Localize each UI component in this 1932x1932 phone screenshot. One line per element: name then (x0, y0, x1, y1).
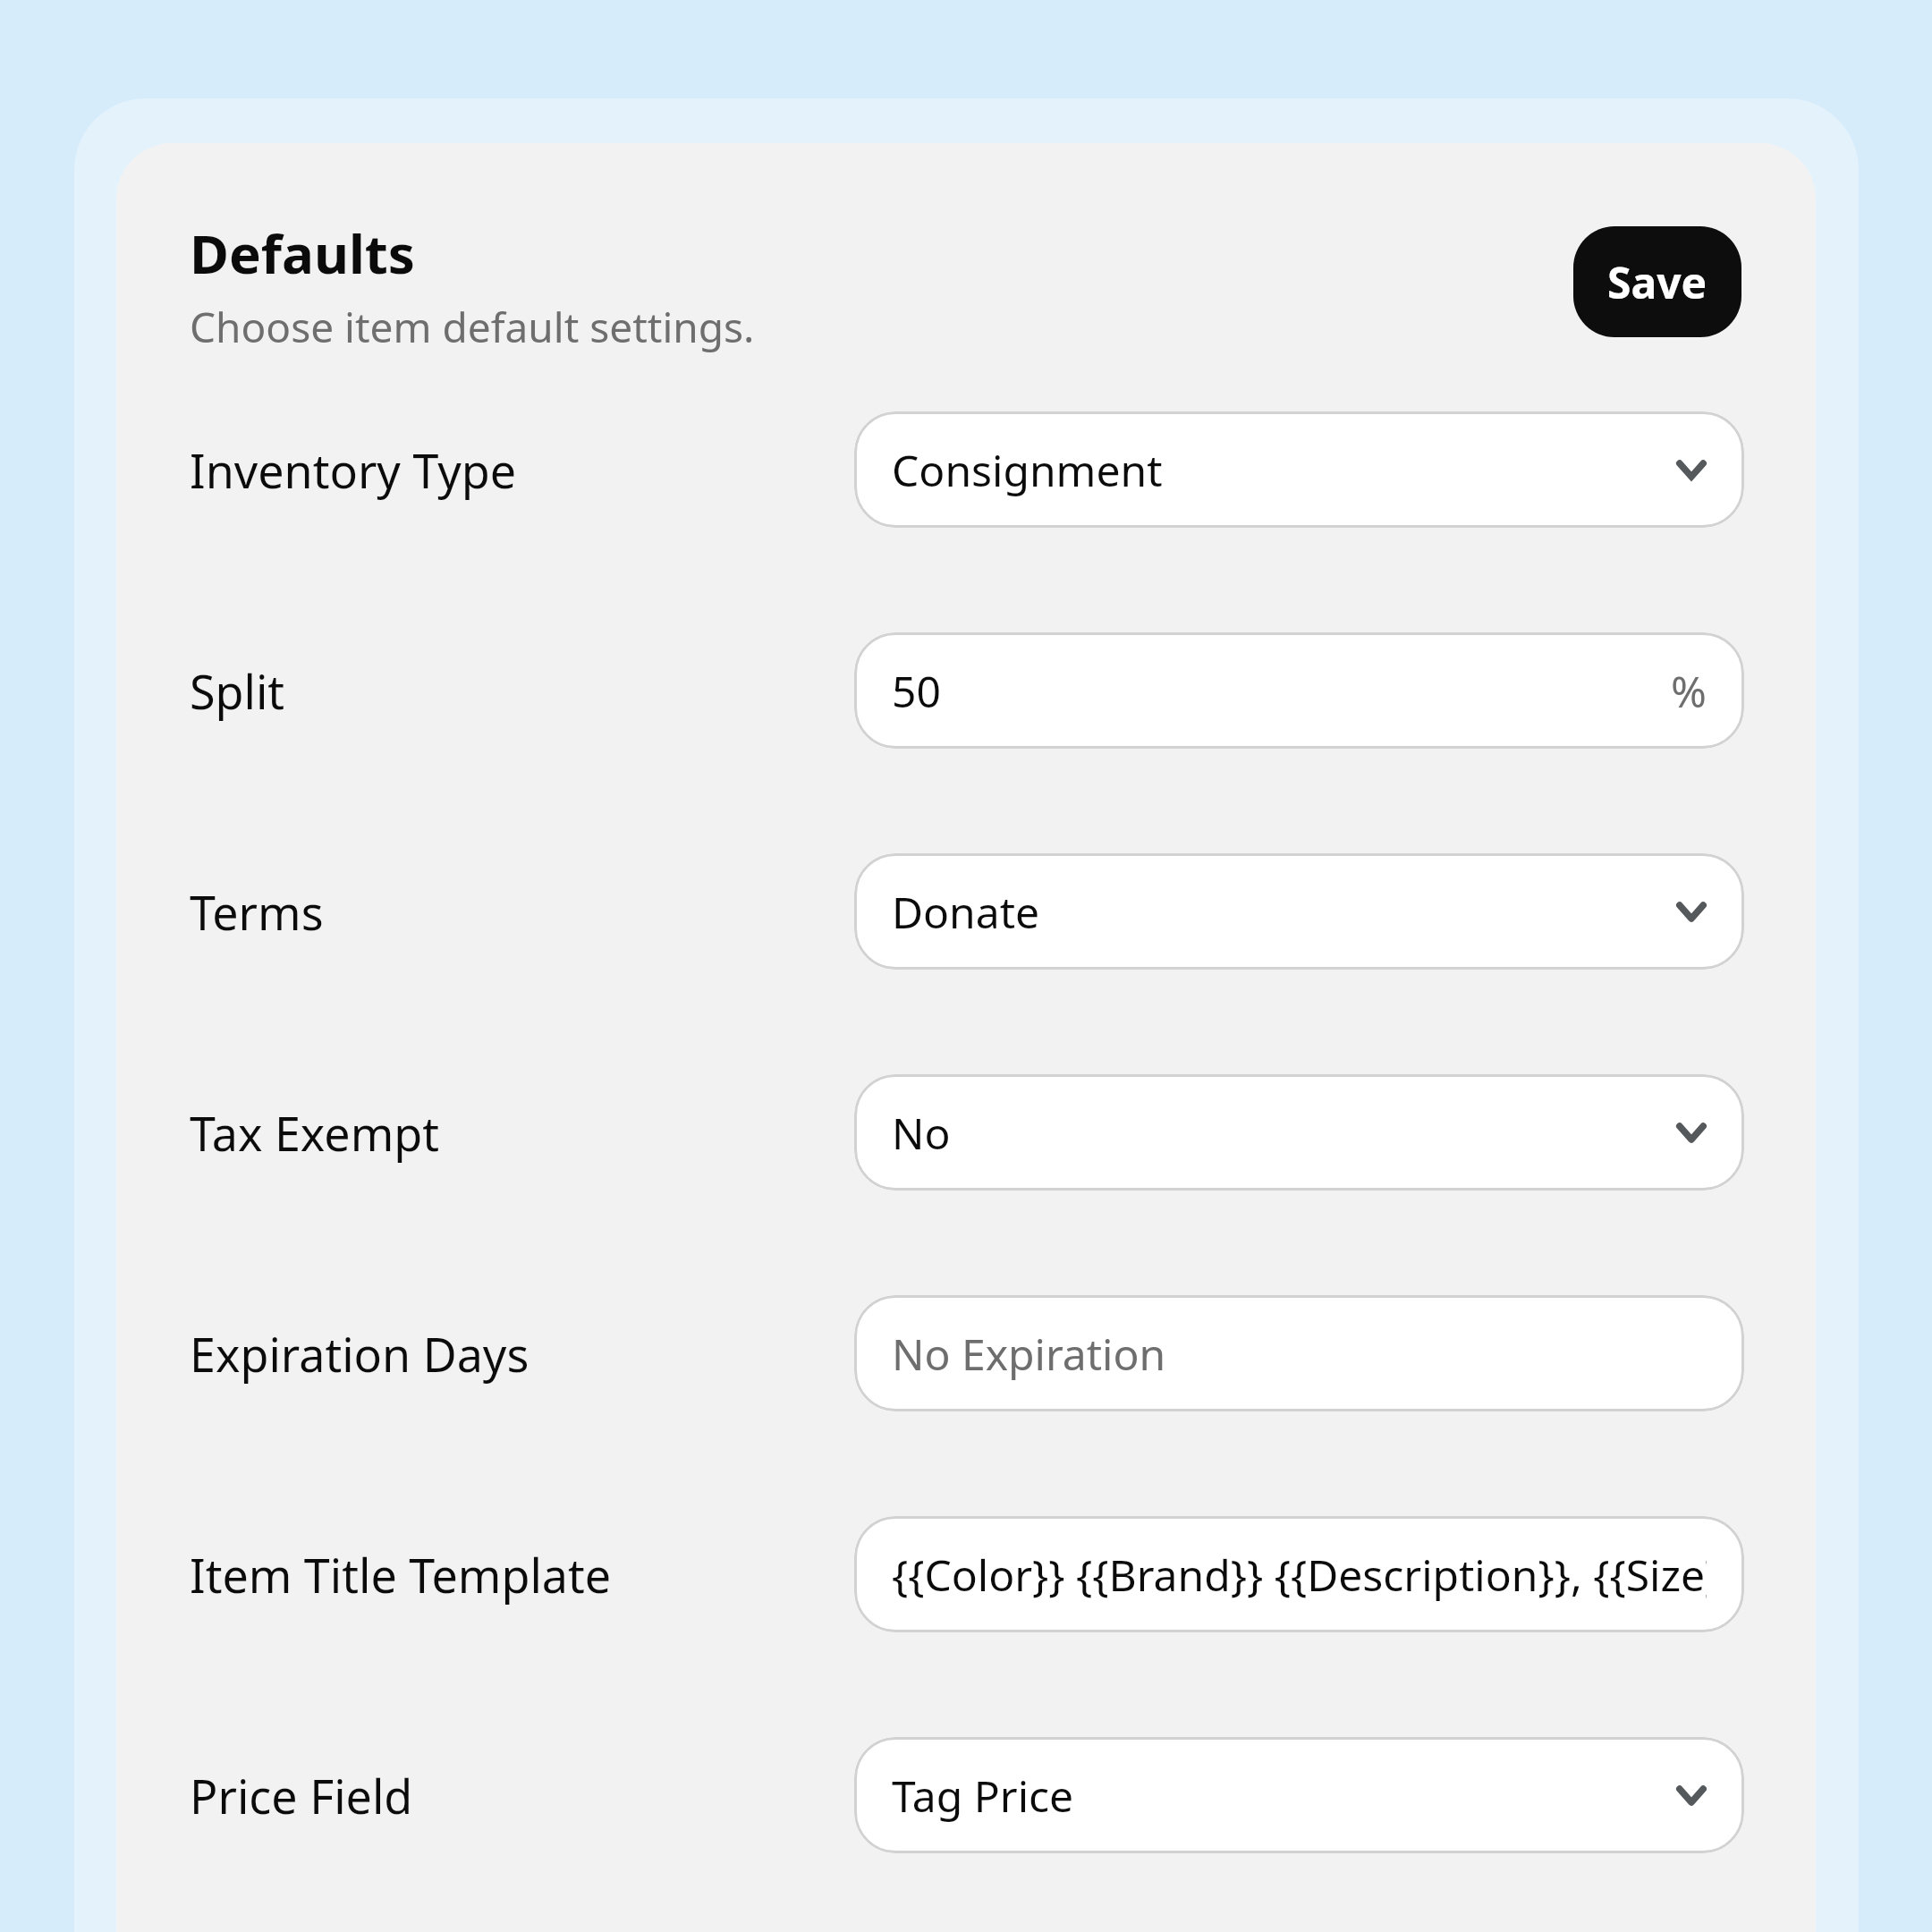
staticText: % (1671, 662, 1707, 720)
staticText: Price Field (190, 1764, 413, 1827)
button[interactable]: Save (1573, 226, 1741, 337)
button[interactable]: Consignment (854, 411, 1744, 528)
staticText: Defaults (190, 216, 415, 290)
staticText: Save (1607, 253, 1707, 311)
staticText: {{Color}} {{Brand}} {{Description}}, {{S… (892, 1546, 1707, 1604)
staticText: Choose item default settings. (190, 299, 755, 355)
button[interactable]: No (854, 1074, 1744, 1191)
staticText: Tax Exempt (190, 1101, 440, 1165)
staticText: 50 (892, 662, 1671, 720)
staticText: Terms (190, 880, 324, 944)
staticText: Expiration Days (190, 1322, 530, 1385)
staticText: No Expiration (892, 1325, 1707, 1383)
button[interactable]: No Expiration (854, 1295, 1744, 1411)
staticText: Consignment (892, 441, 1676, 499)
button[interactable]: Tag Price (854, 1737, 1744, 1853)
staticText: No (892, 1104, 1676, 1162)
staticText: Tag Price (892, 1767, 1676, 1825)
button[interactable]: 50 (854, 632, 1744, 749)
staticText: Inventory Type (190, 438, 517, 502)
staticText: Donate (892, 883, 1676, 941)
staticText: Split (190, 659, 285, 723)
button[interactable]: Donate (854, 853, 1744, 970)
button[interactable]: {{Color}} {{Brand}} {{Description}}, {{S… (854, 1516, 1744, 1632)
staticText: Item Title Template (190, 1543, 612, 1606)
